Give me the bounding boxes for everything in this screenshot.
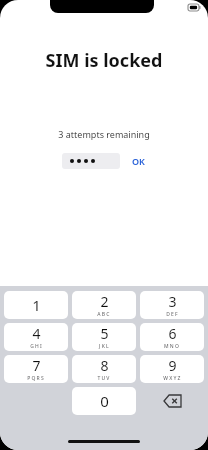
staticText: WXYZ [163, 375, 182, 382]
button[interactable]: Backspace [140, 387, 204, 415]
button[interactable]: 7 [4, 355, 68, 383]
staticText: 3 attempts remaining [0, 128, 208, 140]
staticText: 1 [32, 295, 41, 315]
staticText: 8 [100, 356, 109, 375]
staticText: 7 [32, 356, 41, 375]
button[interactable]: 8 [72, 355, 136, 383]
button[interactable]: 9 [140, 355, 204, 383]
button[interactable]: 6 [140, 323, 204, 351]
button[interactable]: 0 [72, 387, 136, 415]
button[interactable]: 5 [72, 323, 136, 351]
staticText: JKL [99, 343, 110, 350]
staticText: SIM is locked [0, 48, 208, 73]
staticText: 2 [100, 292, 109, 311]
staticText: TUV [97, 375, 111, 382]
button[interactable]: 3 [140, 291, 204, 319]
button[interactable]: OK [130, 153, 147, 169]
staticText: OK [132, 155, 145, 167]
button[interactable]: 1 [4, 291, 68, 319]
staticText: 6 [168, 324, 177, 343]
staticText: ABC [97, 311, 111, 318]
button[interactable]: 2 [72, 291, 136, 319]
staticText: 4 [32, 324, 41, 343]
staticText: 3 [168, 292, 177, 311]
staticText: 5 [100, 324, 109, 343]
button[interactable] [62, 153, 120, 169]
staticText: MNO [164, 343, 180, 350]
staticText: 0 [100, 391, 109, 411]
button[interactable]: 4 [4, 323, 68, 351]
staticText: DEF [166, 311, 179, 318]
staticText: GHI [30, 343, 43, 350]
staticText: PQRS [27, 375, 45, 382]
staticText: 9 [168, 356, 177, 375]
